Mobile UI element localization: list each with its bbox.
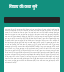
staticText: एक समय की बात है जब भगवान शिव कैलाश पर्व… xyxy=(5,28,59,64)
button[interactable]: एक समय की बात है जब भगवान शिव कैलाश पर्व… xyxy=(4,27,60,72)
staticText: शिवाय की कथा सुनें xyxy=(9,4,38,9)
button[interactable]: शिवाय की कथा सुनें xyxy=(0,2,64,11)
